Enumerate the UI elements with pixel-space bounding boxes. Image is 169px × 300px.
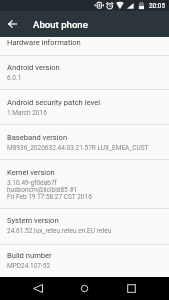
staticText: Kernel version	[7, 168, 55, 177]
staticText: About phone	[33, 19, 88, 30]
staticText: M8936_2020632.44.03.21.57R LUX_EMEA_CUST	[7, 144, 149, 152]
staticText: Android version	[7, 63, 60, 72]
button[interactable]: Navigate up	[0, 11, 26, 37]
button[interactable]: Recent apps	[120, 277, 143, 300]
staticText: 6.0.1	[7, 74, 22, 82]
staticText: 1 March 2016	[7, 109, 47, 117]
staticText: 3.10.49-gf0dab7f hudsoncm@ilclbld85 #1 F…	[7, 179, 92, 200]
staticText: 24.61.52.lux_reteu.reteu.en.EU reteu	[7, 227, 112, 235]
staticText: 20:05	[149, 2, 165, 9]
button[interactable]: Android security patch level	[0, 90, 169, 124]
button[interactable]: Build number	[0, 245, 169, 277]
button[interactable]: Android version	[0, 56, 169, 89]
staticText: System version	[7, 216, 59, 225]
button[interactable]: Kernel version	[0, 160, 169, 208]
button[interactable]: Back	[26, 277, 49, 300]
staticText: Android security patch level	[7, 98, 101, 107]
button[interactable]: System version	[0, 209, 169, 244]
staticText: Hardware information	[7, 38, 81, 47]
staticText: Baseband version	[7, 133, 68, 142]
button[interactable]: Hardware information	[0, 37, 169, 55]
staticText: MPD24.107-52	[7, 262, 51, 270]
button[interactable]: Home	[73, 277, 96, 300]
staticText: Build number	[7, 251, 52, 260]
button[interactable]: Baseband version	[0, 125, 169, 159]
